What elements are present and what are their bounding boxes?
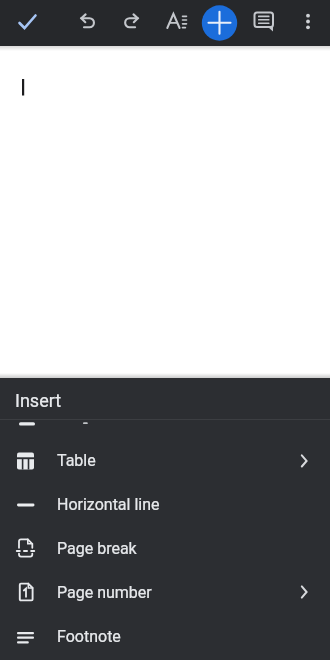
button[interactable] — [155, 1, 198, 45]
button[interactable] — [201, 5, 238, 42]
staticText: Page number — [57, 583, 152, 602]
staticText: Footnote — [57, 627, 121, 646]
staticText: Page break — [57, 539, 137, 558]
staticText: Table — [57, 451, 96, 470]
button[interactable]: Table — [0, 438, 330, 482]
staticText: Horizontal line — [57, 495, 160, 514]
button[interactable] — [6, 1, 49, 45]
button[interactable] — [287, 1, 330, 45]
button[interactable] — [66, 1, 109, 45]
button[interactable]: Page number — [0, 570, 330, 614]
staticText: Insert — [15, 390, 62, 411]
button[interactable]: Page break — [0, 526, 330, 570]
button[interactable]: Footnote — [0, 614, 330, 658]
button[interactable]: Horizontal line — [0, 482, 330, 526]
button[interactable] — [242, 1, 285, 45]
button[interactable] — [110, 1, 153, 45]
